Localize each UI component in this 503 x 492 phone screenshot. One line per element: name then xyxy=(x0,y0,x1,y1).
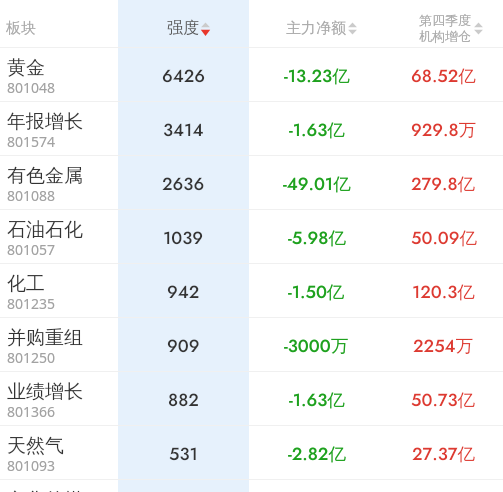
staticText: -1.63亿 xyxy=(289,117,345,142)
staticText: 业绩增长 xyxy=(7,380,83,404)
staticText: 文化传媒 xyxy=(7,488,83,492)
staticText: 801057 xyxy=(7,240,56,259)
staticText: 120.3亿 xyxy=(412,279,475,304)
staticText: 3414 xyxy=(163,117,204,142)
button[interactable]: 主力净额 xyxy=(249,0,384,48)
button[interactable]: 化工 xyxy=(0,264,503,318)
staticText: 有色金属 xyxy=(7,164,83,188)
staticText: 化工 xyxy=(7,272,45,296)
staticText: 2254万 xyxy=(413,333,474,358)
staticText: 并购重组 xyxy=(7,326,83,350)
button[interactable]: 并购重组 xyxy=(0,318,503,372)
staticText: 石油石化 xyxy=(7,218,83,242)
staticText: 50.73亿 xyxy=(411,387,476,412)
staticText: 第四季度 xyxy=(419,12,471,28)
button[interactable]: 石油石化 xyxy=(0,210,503,264)
staticText: 68.52亿 xyxy=(411,63,476,88)
staticText: 801048 xyxy=(7,78,56,97)
staticText: 2636 xyxy=(162,171,205,196)
button[interactable]: 第四季度 xyxy=(384,0,503,48)
button[interactable]: 板块 xyxy=(0,0,118,48)
staticText: -1.63亿 xyxy=(289,387,345,412)
staticText: 6426 xyxy=(162,63,206,88)
staticText: -5.98亿 xyxy=(288,225,346,250)
button[interactable]: 年报增长 xyxy=(0,102,503,156)
staticText: -3000万 xyxy=(284,333,349,358)
staticText: 强度 xyxy=(167,18,199,38)
button[interactable]: 天然气 xyxy=(0,426,503,480)
staticText: 黄金 xyxy=(7,56,45,80)
staticText: 801088 xyxy=(7,186,56,205)
staticText: -1.50亿 xyxy=(288,279,345,304)
staticText: -13.23亿 xyxy=(284,63,350,88)
staticText: 27.37亿 xyxy=(412,441,476,466)
staticText: 1039 xyxy=(163,225,204,250)
button[interactable]: 强度 xyxy=(118,0,249,48)
staticText: 801574 xyxy=(7,132,56,151)
staticText: 机构增仓 xyxy=(419,28,471,44)
staticText: 天然气 xyxy=(7,434,64,458)
staticText: 531 xyxy=(169,441,198,466)
staticText: 801093 xyxy=(7,456,56,475)
button[interactable]: 黄金 xyxy=(0,48,503,102)
staticText: 929.8万 xyxy=(411,117,477,142)
staticText: 801235 xyxy=(7,294,56,313)
staticText: 279.8亿 xyxy=(411,171,476,196)
staticText: -49.01亿 xyxy=(283,171,351,196)
button[interactable]: 文化传媒 xyxy=(0,480,503,492)
staticText: 主力净额 xyxy=(286,19,346,38)
staticText: 882 xyxy=(168,387,199,412)
staticText: 50.09亿 xyxy=(411,225,477,250)
staticText: 801250 xyxy=(7,348,56,367)
button[interactable]: 业绩增长 xyxy=(0,372,503,426)
staticText: 909 xyxy=(167,333,200,358)
staticText: 942 xyxy=(167,279,200,304)
staticText: -2.82亿 xyxy=(288,441,346,466)
staticText: 板块 xyxy=(6,19,36,38)
button[interactable]: 有色金属 xyxy=(0,156,503,210)
staticText: 年报增长 xyxy=(7,110,83,134)
staticText: 801366 xyxy=(7,402,56,421)
